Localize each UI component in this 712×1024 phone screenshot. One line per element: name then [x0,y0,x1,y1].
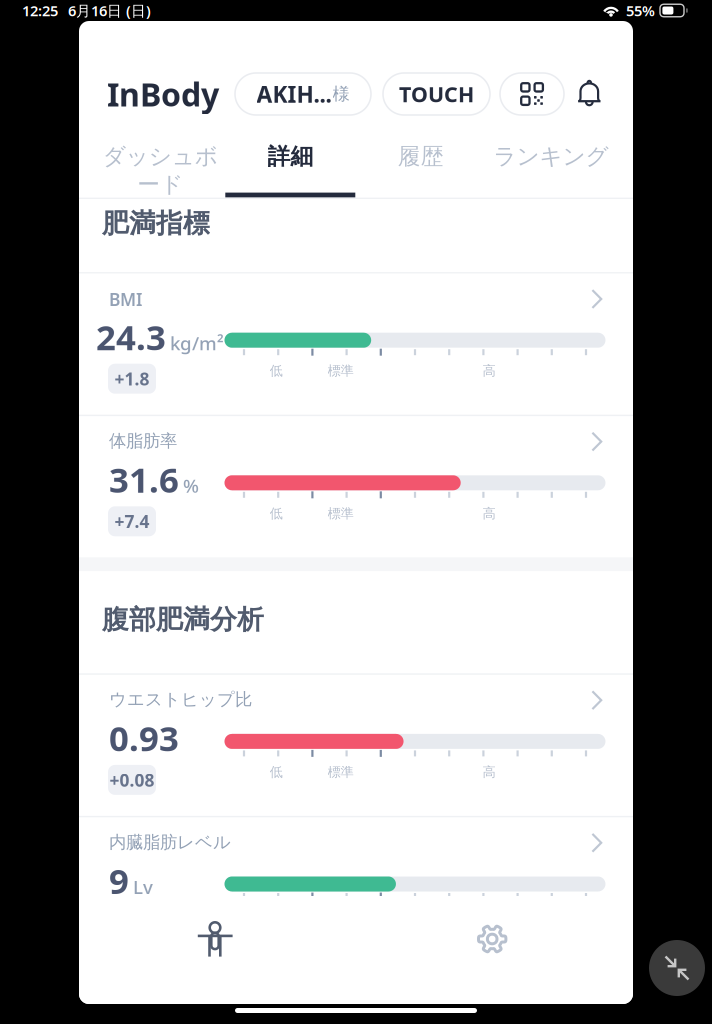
staticText: 肥満指標 [102,207,210,240]
button[interactable]: 詳細 [225,134,355,198]
staticText: 高 [482,505,495,522]
staticText: 低 [269,505,282,522]
staticText: ウエストヒップ比 [109,689,252,710]
staticText: Lv [133,874,153,899]
button[interactable]: 体脂肪率 [79,416,633,557]
staticText: 標準 [327,363,353,379]
staticText: 高 [482,764,495,780]
staticText: 標準 [327,505,353,522]
staticText: 腹部肥満分析 [102,603,264,636]
staticText: 詳細 [267,143,313,170]
button[interactable]: 縮小 [649,940,705,996]
staticText: kg/m² [170,330,224,355]
staticText: ランキング [493,143,608,170]
staticText: 24.3 [96,314,166,360]
staticText: +7.4 [114,510,149,533]
staticText: +0.08 [109,768,154,791]
button[interactable]: 体組成 [155,896,275,982]
button[interactable]: 履歴 [355,134,486,198]
staticText: 9 [109,857,129,903]
staticText: InBody [107,73,219,115]
staticText: 標準 [327,764,353,780]
staticText: TOUCH [399,80,474,108]
staticText: % [183,473,199,498]
staticText: +1.8 [114,367,149,390]
staticText: BMI [109,288,142,311]
staticText: 0.93 [109,715,179,761]
staticText: 6月16日 (日) [68,1,151,20]
button[interactable]: 内臓脂肪レベル [79,817,633,958]
button[interactable]: ウエストヒップ比 [79,675,633,816]
button[interactable]: AKIH... [235,73,371,115]
staticText: 12:25 [22,1,58,20]
staticText: 55% [626,1,655,20]
button[interactable]: TOUCH [383,73,490,115]
staticText: 高 [482,363,495,379]
staticText: 履歴 [397,143,443,170]
button[interactable]: お知らせ [573,73,606,115]
staticText: 様 [332,83,349,105]
staticText: ダッシュボ ード [103,143,218,198]
staticText: 体脂肪率 [109,430,177,452]
staticText: AKIH... [256,79,331,109]
staticText: 内臓脂肪レベル [109,831,231,853]
button[interactable]: BMI [79,274,633,415]
staticText: 低 [269,764,282,780]
button[interactable]: 設定 [432,896,552,982]
button[interactable]: QRコード [500,73,564,115]
staticText: 低 [269,363,282,379]
button[interactable]: ダッシュボ ード [95,134,225,198]
button[interactable]: ランキング [486,134,616,198]
staticText: 31.6 [109,456,179,502]
